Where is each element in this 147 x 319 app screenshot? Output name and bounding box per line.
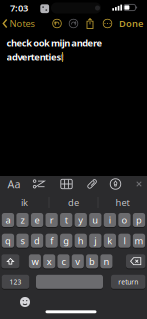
button[interactable]: o bbox=[118, 212, 131, 227]
staticText: s bbox=[20, 234, 24, 247]
button[interactable]: Table bbox=[61, 179, 72, 189]
button[interactable]: d bbox=[31, 233, 43, 248]
button[interactable]: de bbox=[50, 194, 97, 210]
staticText: f bbox=[50, 234, 53, 247]
button[interactable]: j bbox=[89, 233, 101, 248]
button[interactable]: Done bbox=[119, 17, 143, 30]
staticText: z bbox=[20, 214, 24, 226]
button[interactable]: space bbox=[36, 274, 103, 289]
button[interactable]: Notes bbox=[2, 14, 34, 32]
staticText: p bbox=[136, 214, 142, 226]
staticText: 123 bbox=[9, 277, 21, 286]
button[interactable]: ik bbox=[1, 194, 48, 210]
staticText: h bbox=[78, 234, 84, 247]
staticText: l bbox=[123, 234, 125, 247]
button[interactable]: Share bbox=[86, 18, 93, 29]
staticText: Done bbox=[119, 17, 143, 30]
button[interactable]: a bbox=[2, 212, 14, 227]
button[interactable]: n bbox=[100, 254, 112, 269]
button[interactable]: Shift bbox=[1, 254, 19, 269]
button[interactable]: t bbox=[60, 212, 72, 227]
button[interactable]: Redo bbox=[69, 19, 78, 28]
button[interactable]: v bbox=[72, 254, 84, 269]
staticText: v bbox=[75, 255, 80, 267]
staticText: d bbox=[34, 234, 40, 247]
staticText: i bbox=[109, 214, 111, 226]
staticText: Aa bbox=[7, 177, 20, 191]
button[interactable]: het bbox=[99, 194, 146, 210]
staticText: q bbox=[5, 234, 11, 247]
staticText: e bbox=[35, 214, 40, 226]
staticText: n bbox=[103, 255, 109, 267]
staticText: j bbox=[94, 234, 96, 247]
button[interactable]: More bbox=[103, 19, 112, 28]
button[interactable]: Format bbox=[7, 177, 20, 191]
button[interactable]: i bbox=[104, 212, 116, 227]
button[interactable]: k bbox=[104, 233, 116, 248]
button[interactable]: h bbox=[75, 233, 87, 248]
button[interactable]: Checklist bbox=[33, 179, 45, 188]
button[interactable]: y bbox=[75, 212, 87, 227]
staticText: Notes bbox=[9, 17, 34, 30]
staticText: m bbox=[134, 234, 143, 247]
button[interactable]: return bbox=[111, 274, 145, 289]
button[interactable]: c bbox=[57, 254, 70, 269]
button[interactable]: b bbox=[86, 254, 98, 269]
button[interactable]: w bbox=[29, 254, 41, 269]
button[interactable]: Attach bbox=[88, 178, 96, 190]
button[interactable]: z bbox=[16, 212, 29, 227]
button[interactable]: l bbox=[118, 233, 131, 248]
staticText: o bbox=[121, 214, 127, 226]
button[interactable]: Delete bbox=[126, 254, 145, 269]
staticText: het bbox=[115, 196, 129, 209]
button[interactable]: Emoji bbox=[20, 297, 30, 307]
staticText: b bbox=[89, 255, 95, 267]
staticText: c bbox=[61, 255, 65, 267]
staticText: advertenties! bbox=[6, 51, 64, 63]
button[interactable]: p bbox=[133, 212, 145, 227]
staticText: w bbox=[31, 255, 38, 267]
button[interactable]: u bbox=[89, 212, 101, 227]
button[interactable]: 123 bbox=[2, 274, 29, 289]
staticText: a bbox=[5, 214, 10, 226]
button[interactable]: f bbox=[45, 233, 58, 248]
button[interactable]: x bbox=[43, 254, 55, 269]
staticText: g bbox=[63, 234, 69, 247]
button[interactable]: g bbox=[60, 233, 72, 248]
button[interactable]: q bbox=[2, 233, 14, 248]
button[interactable]: Dismiss bbox=[136, 181, 142, 187]
staticText: t bbox=[65, 214, 68, 226]
staticText: return bbox=[118, 277, 138, 286]
staticText: de bbox=[68, 196, 79, 209]
staticText: ik bbox=[21, 196, 28, 209]
button[interactable]: e bbox=[31, 212, 43, 227]
staticText: 7:03 bbox=[10, 2, 28, 14]
staticText: x bbox=[47, 255, 52, 267]
staticText: y bbox=[78, 214, 83, 226]
button[interactable]: Undo bbox=[53, 19, 61, 28]
button[interactable]: s bbox=[16, 233, 29, 248]
button[interactable]: Markup bbox=[110, 179, 121, 189]
staticText: k bbox=[107, 234, 112, 247]
button[interactable]: m bbox=[133, 233, 145, 248]
button[interactable]: r bbox=[45, 212, 58, 227]
staticText: r bbox=[50, 214, 54, 226]
staticText: u bbox=[92, 214, 98, 226]
staticText: check ook mijn andere bbox=[6, 37, 102, 49]
